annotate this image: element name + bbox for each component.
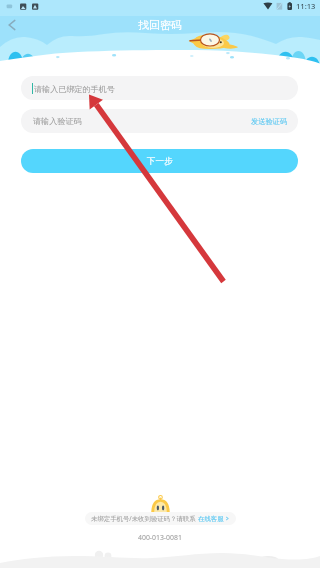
staticText: 11:13 [296,1,316,11]
staticText: 请输入验证码 [33,116,82,126]
staticText: 请输入已绑定的手机号 [34,84,115,94]
staticText: 未绑定手机号/未收到验证码？请联系 [91,514,198,523]
button[interactable]: 下一步 [21,149,298,173]
staticText: 找回密码 [0,19,320,33]
staticText: 发送验证码 [251,117,287,126]
staticText: 在线客服 [198,515,224,523]
button[interactable]: 发送验证码 [240,109,298,133]
button[interactable]: 请输入已绑定的手机号 [21,76,298,100]
staticText: 下一步 [147,156,173,167]
staticText: 400-013-0081 [138,533,182,542]
button[interactable]: 未绑定手机号/未收到验证码？请联系 [85,512,236,525]
button[interactable]: Back [0,11,24,39]
